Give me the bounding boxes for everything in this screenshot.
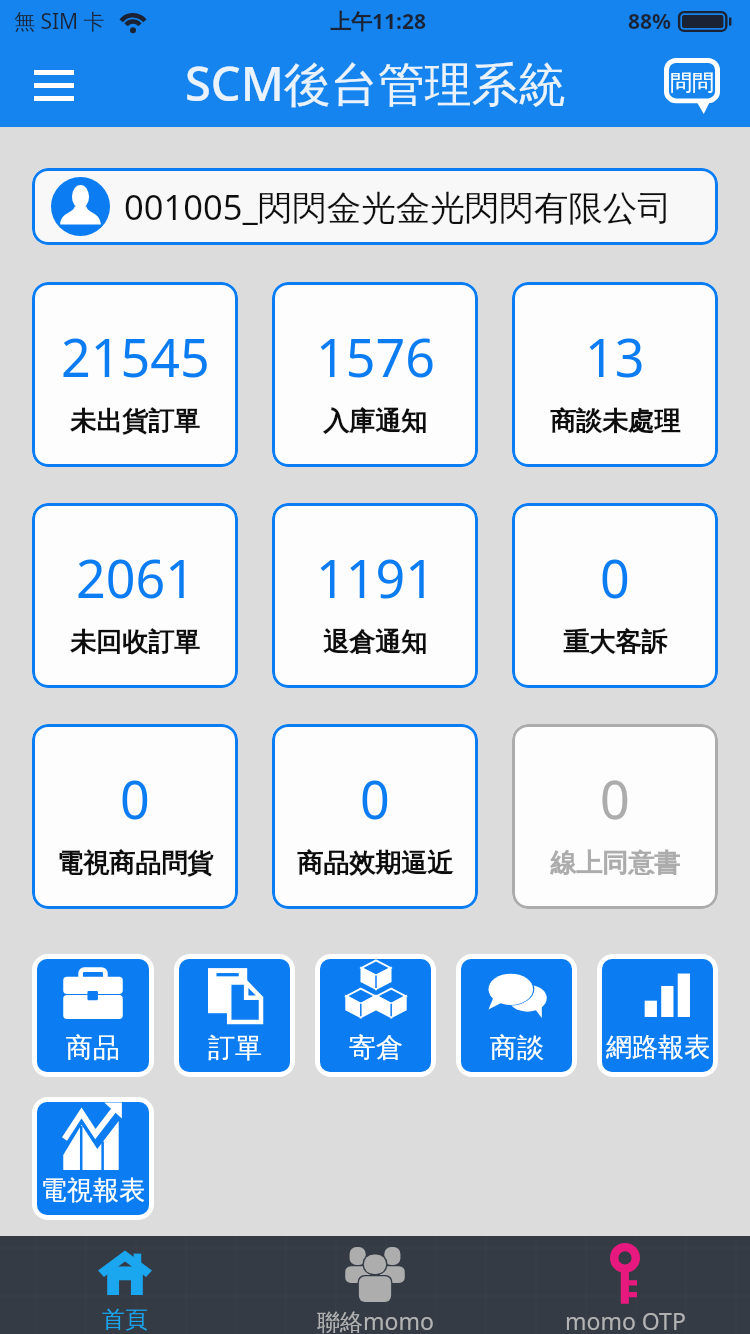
- button[interactable]: 0: [512, 503, 718, 688]
- button[interactable]: 1576: [272, 282, 478, 467]
- button[interactable]: momo OTP: [500, 1236, 750, 1334]
- staticText: 21545: [61, 321, 210, 392]
- staticText: 電視商品問貨: [57, 847, 213, 880]
- button[interactable]: 0: [272, 724, 478, 909]
- staticText: 未出貨訂單: [70, 405, 200, 438]
- staticText: 1191: [316, 542, 435, 613]
- staticText: 線上同意書: [550, 847, 680, 880]
- staticText: 0: [360, 763, 390, 834]
- staticText: 聯絡momo: [317, 1305, 434, 1334]
- button[interactable]: 商談: [461, 959, 572, 1072]
- staticText: 訂單: [208, 1031, 262, 1065]
- staticText: 重大客訴: [563, 626, 667, 659]
- staticText: 無 SIM 卡: [14, 7, 105, 36]
- staticText: 首頁: [102, 1305, 148, 1334]
- button[interactable]: 0: [32, 724, 238, 909]
- staticText: 商品效期逼近: [297, 847, 453, 880]
- staticText: 001005_閃閃金光金光閃閃有限公司: [124, 183, 672, 230]
- staticText: 88%: [628, 7, 671, 36]
- button[interactable]: 1191: [272, 503, 478, 688]
- staticText: 退倉通知: [323, 626, 427, 659]
- staticText: SCM後台管理系統: [185, 51, 566, 115]
- staticText: 2061: [76, 542, 195, 613]
- button[interactable]: 21545: [32, 282, 238, 467]
- button[interactable]: 13: [512, 282, 718, 467]
- staticText: 商談: [490, 1031, 544, 1065]
- staticText: 0: [600, 763, 630, 834]
- button[interactable]: 網路報表: [602, 959, 713, 1072]
- button[interactable]: 2061: [32, 503, 238, 688]
- staticText: 問問: [670, 69, 714, 97]
- button[interactable]: 電視報表: [37, 1102, 149, 1215]
- button[interactable]: 訂單: [179, 959, 290, 1072]
- staticText: 上午11:28: [330, 7, 426, 36]
- button[interactable]: Menu: [26, 57, 82, 113]
- staticText: 電視報表: [41, 1174, 145, 1207]
- staticText: 0: [120, 763, 150, 834]
- staticText: 13: [585, 321, 645, 392]
- staticText: 寄倉: [349, 1031, 403, 1065]
- button[interactable]: 寄倉: [320, 959, 431, 1072]
- button[interactable]: Ask: [658, 47, 730, 123]
- staticText: 網路報表: [606, 1031, 710, 1064]
- staticText: 1576: [316, 321, 435, 392]
- button[interactable]: 聯絡momo: [250, 1236, 500, 1334]
- staticText: 0: [600, 542, 630, 613]
- button[interactable]: 001005_閃閃金光金光閃閃有限公司: [32, 168, 718, 245]
- button[interactable]: 商品: [37, 959, 149, 1072]
- staticText: 商品: [66, 1031, 120, 1065]
- staticText: 商談未處理: [550, 405, 680, 438]
- staticText: 未回收訂單: [70, 626, 200, 659]
- button[interactable]: 首頁: [0, 1236, 250, 1334]
- staticText: momo OTP: [565, 1305, 686, 1334]
- staticText: 入庫通知: [323, 405, 427, 438]
- button[interactable]: 0: [512, 724, 718, 909]
